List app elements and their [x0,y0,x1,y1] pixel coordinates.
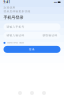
staticText: 手机号登录 [3,15,23,20]
button[interactable]: 获取验证码 [42,34,57,37]
staticText: ▮▮▮ [54,1,57,3]
staticText: 已阅读并同意《用户协议》《隐私政策》 [6,42,24,44]
staticText: 获取验证码 [42,34,57,37]
staticText: 9:41 [3,0,10,4]
staticText: 登录后体验更多功能 [3,10,30,13]
button[interactable]: 微信登录 [18,91,22,95]
staticText: 登录 [29,48,35,51]
staticText: 请输入手机号 [6,25,24,28]
button[interactable]: 登录 [3,46,60,53]
staticText: 欢迎使用 [3,6,15,9]
button[interactable]: 微博登录 [42,91,46,95]
button[interactable]: QQ登录 [30,91,34,95]
button[interactable]: 同意用户协议 [3,42,5,44]
staticText: 请输入验证码 [6,34,24,37]
